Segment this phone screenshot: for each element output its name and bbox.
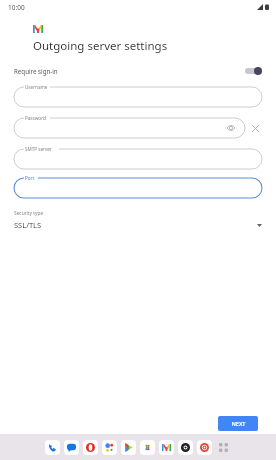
button[interactable]: Security type — [0, 210, 276, 230]
button[interactable]: Require sign-in — [0, 63, 276, 78]
button[interactable]: Messages — [64, 440, 79, 455]
button[interactable]: Photos — [140, 440, 155, 455]
button[interactable]: Show password — [225, 122, 237, 134]
button[interactable]: Clear password — [248, 121, 262, 135]
staticText: Outgoing server settings — [33, 38, 168, 54]
button[interactable]: All apps — [216, 440, 231, 455]
staticText: Username — [25, 84, 48, 90]
staticText: Password — [25, 115, 46, 121]
button[interactable]: Port — [14, 174, 262, 198]
staticText: NEXT — [231, 420, 246, 428]
button[interactable]: Record — [197, 440, 212, 455]
button[interactable]: Play Store — [121, 440, 136, 455]
staticText: 10:00 — [8, 3, 25, 12]
button[interactable]: Camera — [178, 440, 193, 455]
button[interactable]: Password — [14, 114, 245, 138]
button[interactable]: Gmail — [159, 440, 174, 455]
staticText: Security type — [14, 210, 44, 217]
staticText: Port — [25, 175, 35, 181]
button[interactable]: Phone — [45, 440, 60, 455]
button[interactable]: Username — [14, 83, 262, 107]
button[interactable]: Opera — [83, 440, 98, 455]
staticText: SSL/TLS — [14, 220, 42, 230]
button[interactable]: SMTP server — [14, 145, 262, 169]
button[interactable]: NEXT — [218, 416, 258, 431]
staticText: SMTP server — [25, 146, 52, 152]
button[interactable]: Assistant — [102, 440, 117, 455]
staticText: Require sign-in — [14, 67, 58, 75]
